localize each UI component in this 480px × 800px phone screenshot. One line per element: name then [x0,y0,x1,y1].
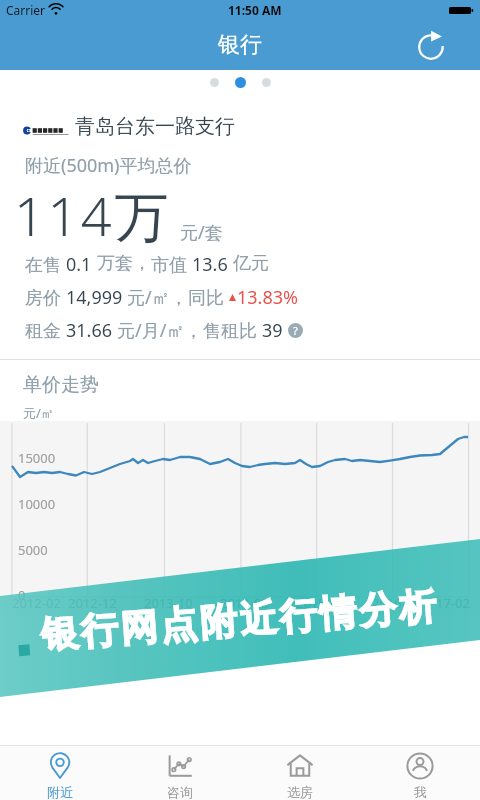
button[interactable]: Refresh [410,22,456,68]
staticText: 14,999 [66,285,127,310]
button[interactable]: 咨询 [120,746,240,800]
staticText: 银行 [218,31,262,59]
staticText: 39 [262,318,288,343]
staticText: 2012-12 [68,594,117,612]
button[interactable]: 附近 [0,746,120,800]
staticText: 2013-10 [144,594,193,612]
staticText: 同比 [188,285,229,310]
staticText: 13.83% [237,285,298,310]
button[interactable]: 选房 [240,746,360,800]
staticText: 售租比 [203,318,262,343]
staticText: 亿元 [233,252,269,275]
staticText: 13.6 [192,252,233,277]
staticText: 5000 [18,541,48,559]
staticText: 咨询 [167,784,193,800]
staticText: 租金 [25,318,66,343]
staticText: 元/㎡， [127,285,188,310]
staticText: 11:50 AM [228,2,282,18]
staticText: 2015-06 [296,594,345,612]
staticText: 万套， [97,252,151,275]
staticText: 2016-04 [372,594,421,612]
staticText: 2014-08 [220,594,269,612]
staticText: 单价走势 [23,373,99,397]
staticText: 15000 [18,449,56,467]
staticText: Carrier [6,2,46,18]
button[interactable]: 我 [360,746,480,800]
staticText: 2012-02 [12,594,61,612]
staticText: 114万 [14,178,171,252]
staticText: 市值 [151,252,192,277]
staticText: 青岛台东一路支行 [75,114,235,139]
staticText: 附近 [47,784,73,800]
staticText: ? [293,323,298,338]
staticText: 在售 [25,252,66,277]
staticText: 银行网点附近行情分析 [38,582,439,659]
staticText: 选房 [287,784,313,800]
staticText: 31.66 [66,318,117,343]
staticText: 附近(500m)平均总价 [25,153,192,178]
staticText: 元/㎡ [23,404,54,422]
staticText: 17-02 [436,594,470,612]
staticText: 10000 [18,495,56,513]
staticText: 0 [18,586,26,604]
staticText: 元/月/㎡， [117,318,203,343]
staticText: 房价 [25,285,66,310]
staticText: 我 [414,784,427,800]
staticText: 元/套 [180,220,223,245]
staticText: 0.1 [66,252,97,277]
